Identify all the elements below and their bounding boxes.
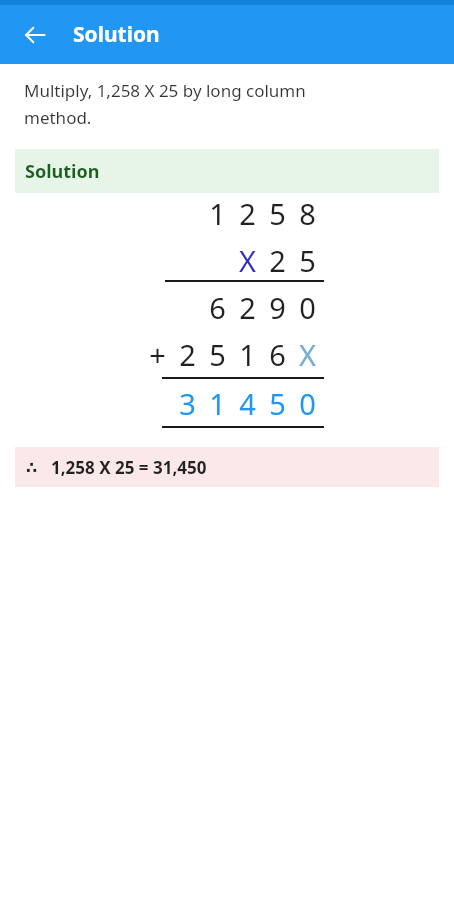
staticText: X (299, 335, 316, 374)
staticText: 5 (269, 384, 286, 423)
staticText: 1 (209, 384, 226, 423)
staticText: 5 (299, 241, 316, 280)
staticText: 5 (269, 194, 286, 233)
staticText: 6 (269, 335, 286, 374)
staticText: 1,258 X 25 = 31,450 (51, 456, 207, 479)
staticText: Solution (25, 159, 100, 184)
staticText: Multiply, 1,258 X 25 by long column meth… (24, 79, 306, 129)
staticText: 1 (239, 335, 256, 374)
staticText: X (239, 241, 256, 280)
staticText: 9 (269, 288, 286, 327)
staticText: 2 (239, 194, 256, 233)
staticText: + (149, 335, 166, 374)
staticText: 2 (179, 335, 196, 374)
staticText: 6 (209, 288, 226, 327)
staticText: 0 (299, 384, 316, 423)
staticText: 5 (209, 335, 226, 374)
staticText: 2 (239, 288, 256, 327)
staticText: 0 (299, 288, 316, 327)
staticText: 4 (239, 384, 256, 423)
staticText: 8 (299, 194, 316, 233)
staticText: Solution (73, 20, 160, 49)
staticText: 3 (179, 384, 196, 423)
staticText: ∴ (26, 458, 38, 477)
staticText: 1 (209, 194, 226, 233)
button[interactable]: Back (15, 15, 55, 55)
staticText: 2 (269, 241, 286, 280)
